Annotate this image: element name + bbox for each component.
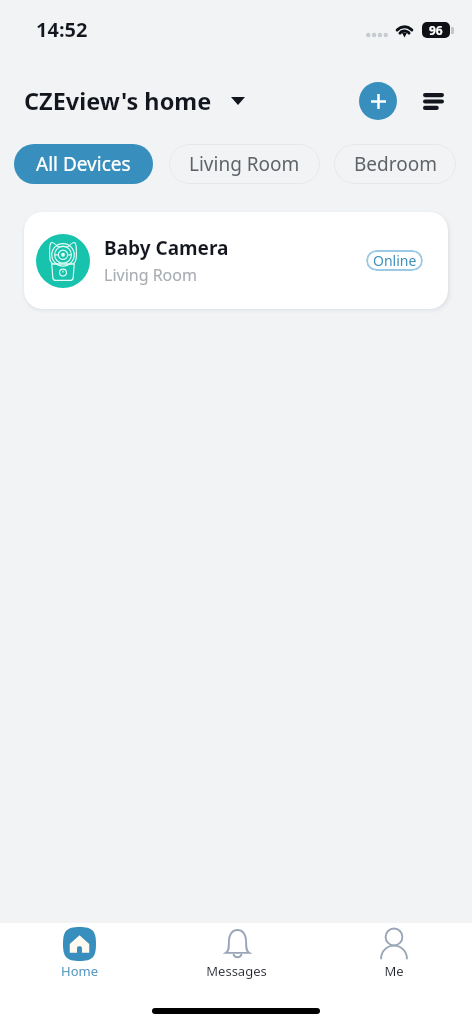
button[interactable]: Me <box>315 923 472 980</box>
button[interactable]: CZEview's home <box>24 85 245 117</box>
button[interactable]: Living Room <box>169 144 320 184</box>
staticText: Home <box>61 962 98 980</box>
staticText: Baby Camera <box>104 235 229 261</box>
staticText: CZEview's home <box>24 85 212 117</box>
button[interactable]: Online <box>366 250 423 271</box>
staticText: Messages <box>206 962 267 980</box>
button[interactable]: Home <box>0 923 158 980</box>
staticText: Me <box>384 962 404 980</box>
staticText: 14:52 <box>36 16 88 43</box>
staticText: Living Room <box>104 264 197 286</box>
button[interactable]: Add device <box>359 82 397 120</box>
staticText: Online <box>373 251 417 270</box>
button[interactable]: Bedroom <box>334 144 456 184</box>
staticText: All Devices <box>36 151 131 177</box>
button[interactable]: All Devices <box>14 144 153 184</box>
button[interactable]: Menu <box>413 81 453 121</box>
button[interactable]: Baby Camera <box>24 212 448 309</box>
staticText: 96 <box>429 22 443 38</box>
staticText: Living Room <box>189 151 300 177</box>
staticText: Bedroom <box>354 151 437 177</box>
button[interactable]: Messages <box>158 923 315 980</box>
